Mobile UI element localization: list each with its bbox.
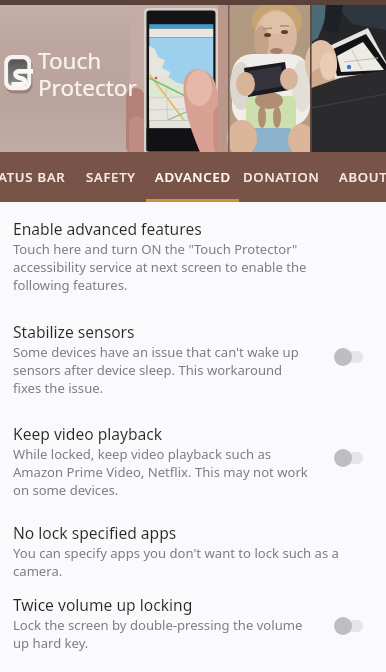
staticText: ABOUT bbox=[339, 168, 386, 186]
button[interactable]: Toggle bbox=[324, 440, 376, 476]
button[interactable]: Touch Protector banner bbox=[0, 0, 386, 152]
staticText: Touch Protector bbox=[38, 45, 137, 103]
button[interactable]: No lock specified apps bbox=[0, 510, 386, 589]
staticText: No lock specified apps bbox=[13, 522, 177, 543]
button[interactable]: ADVANCED bbox=[146, 152, 239, 202]
staticText: Keep video playback bbox=[13, 423, 163, 444]
button[interactable]: Toggle bbox=[324, 608, 376, 644]
button[interactable]: Twice volume up locking bbox=[0, 589, 386, 666]
button[interactable]: Keep video playback bbox=[0, 409, 386, 510]
button[interactable]: STATUS BAR bbox=[0, 152, 82, 202]
staticText: Enable advanced features bbox=[13, 218, 202, 239]
staticText: DONATION bbox=[243, 168, 320, 186]
button[interactable]: Enable advanced features bbox=[0, 202, 386, 309]
staticText: While locked, keep video playback such a… bbox=[13, 445, 310, 499]
staticText: You can specify apps you don't want to l… bbox=[13, 544, 352, 580]
staticText: Lock the screen by double-pressing the v… bbox=[13, 616, 310, 652]
staticText: Touch here and turn ON the "Touch Protec… bbox=[13, 240, 352, 294]
button[interactable]: DONATION bbox=[239, 152, 324, 202]
staticText: Stabilize sensors bbox=[13, 321, 135, 342]
staticText: Twice volume up locking bbox=[13, 594, 193, 615]
staticText: STATUS BAR bbox=[0, 168, 66, 186]
button[interactable]: SAFETY bbox=[75, 152, 146, 202]
staticText: Some devices have an issue that can't wa… bbox=[13, 343, 310, 397]
button[interactable]: ABOUT bbox=[325, 152, 386, 202]
button[interactable]: Stabilize sensors bbox=[0, 309, 386, 409]
staticText: SAFETY bbox=[86, 168, 136, 186]
button[interactable]: Toggle bbox=[324, 339, 376, 375]
staticText: ADVANCED bbox=[155, 168, 231, 186]
